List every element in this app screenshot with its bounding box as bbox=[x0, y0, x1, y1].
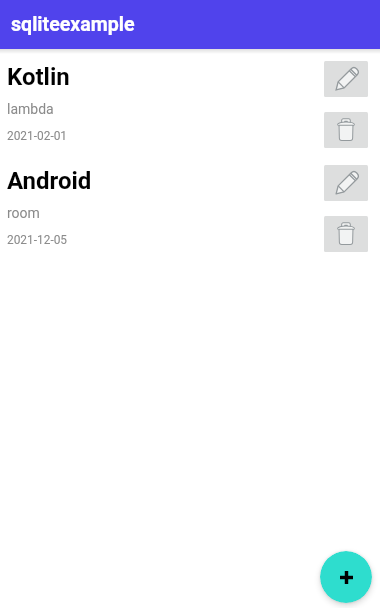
staticText: sqliteexample bbox=[11, 13, 135, 36]
button[interactable]: Delete bbox=[324, 112, 368, 148]
staticText: Android bbox=[7, 167, 92, 195]
staticText: lambda bbox=[7, 101, 54, 117]
button[interactable]: Add note bbox=[320, 551, 372, 603]
button[interactable]: Edit bbox=[324, 165, 368, 201]
staticText: 2021-02-01 bbox=[7, 129, 68, 143]
staticText: 2021-12-05 bbox=[7, 233, 68, 247]
staticText: Kotlin bbox=[7, 63, 70, 91]
button[interactable]: Edit bbox=[324, 61, 368, 97]
button[interactable]: Delete bbox=[324, 216, 368, 252]
staticText: room bbox=[7, 205, 40, 221]
